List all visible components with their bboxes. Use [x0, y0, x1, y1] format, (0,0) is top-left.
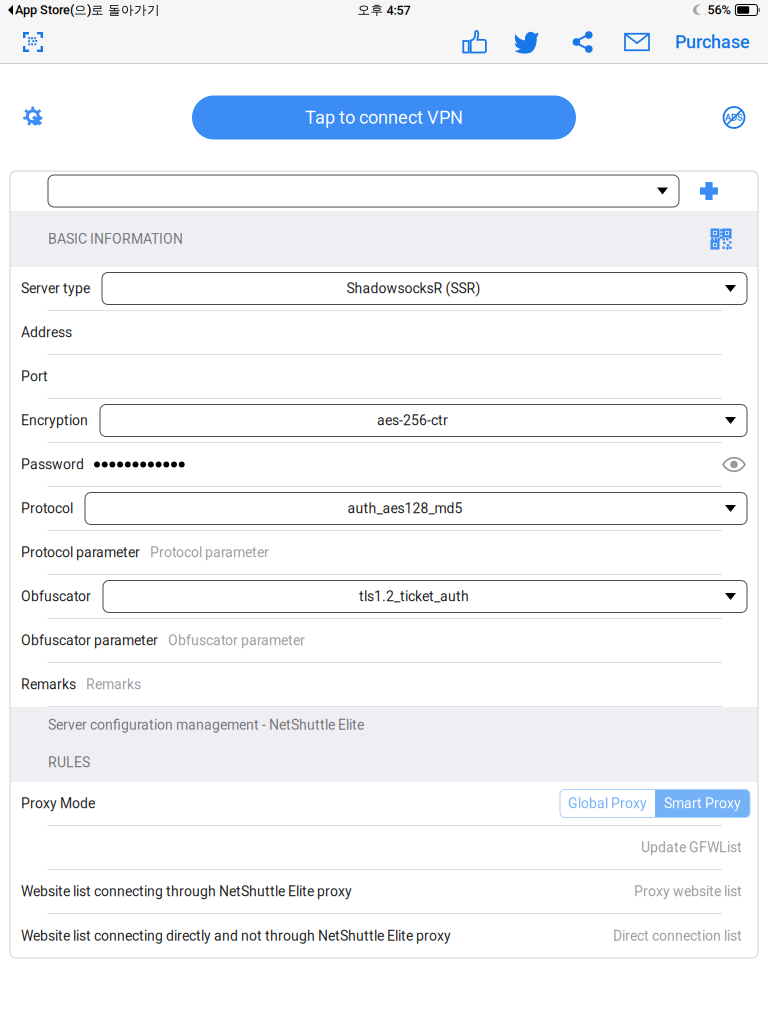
staticText: Protocol parameter	[21, 544, 140, 561]
button[interactable]: ShadowsocksR (SSR)	[102, 272, 747, 304]
staticText: Protocol	[21, 500, 73, 517]
button[interactable]: Mail	[610, 20, 664, 64]
button[interactable]: Global Proxy	[560, 789, 655, 817]
button[interactable]: Settings	[12, 95, 56, 139]
staticText: Remarks	[21, 676, 76, 693]
button[interactable]: Scan QR code	[12, 20, 54, 64]
button[interactable]	[48, 175, 679, 207]
button[interactable]: Show password	[716, 446, 752, 482]
staticText: Smart Proxy	[664, 795, 741, 812]
staticText: Proxy Mode	[21, 795, 95, 812]
staticText: Obfuscator parameter	[21, 632, 158, 649]
button[interactable]: tls1.2_ticket_auth	[103, 580, 747, 612]
staticText: 오후 4:57	[357, 2, 410, 18]
button[interactable]: Smart Proxy	[655, 789, 750, 817]
staticText: Direct connection list	[613, 928, 742, 944]
button[interactable]: Remove ads	[712, 95, 756, 139]
staticText: App Store(으)로 돌아가기	[15, 2, 160, 18]
button[interactable]: Share	[555, 20, 610, 64]
button[interactable]: Share on Twitter	[501, 20, 555, 64]
staticText: 56%	[707, 3, 730, 17]
button[interactable]: Scan QR code	[699, 217, 743, 261]
button[interactable]: Add server	[689, 173, 729, 209]
staticText: tls1.2_ticket_auth	[359, 588, 469, 605]
staticText: BASIC INFORMATION	[48, 231, 183, 247]
button[interactable]: Like	[449, 20, 501, 64]
button[interactable]: Purchase	[664, 20, 756, 64]
staticText: Website list connecting through NetShutt…	[21, 883, 352, 900]
staticText: Encryption	[21, 412, 88, 429]
staticText: Address	[21, 324, 72, 341]
staticText: Protocol parameter	[150, 544, 269, 561]
staticText: Password	[21, 456, 84, 473]
staticText: Server type	[21, 280, 90, 297]
staticText: Website list connecting directly and not…	[21, 928, 451, 944]
staticText: RULES	[48, 754, 90, 771]
staticText: Update GFWList	[641, 839, 742, 856]
staticText: Remarks	[86, 676, 141, 693]
staticText: Purchase	[675, 31, 750, 53]
staticText: Obfuscator	[21, 588, 91, 605]
staticText: Obfuscator parameter	[168, 632, 305, 649]
staticText: aes-256-ctr	[377, 412, 448, 429]
button[interactable]: Tap to connect VPN	[192, 95, 576, 139]
staticText: auth_aes128_md5	[347, 500, 462, 517]
staticText: Proxy website list	[634, 883, 742, 900]
staticText: ADS	[725, 112, 743, 123]
staticText: ShadowsocksR (SSR)	[346, 280, 480, 297]
staticText: Global Proxy	[568, 795, 647, 812]
button[interactable]: auth_aes128_md5	[85, 492, 747, 524]
staticText: Tap to connect VPN	[305, 107, 463, 128]
staticText: Port	[21, 368, 48, 385]
button[interactable]: aes-256-ctr	[100, 404, 747, 436]
staticText: Server configuration management - NetShu…	[48, 717, 364, 733]
